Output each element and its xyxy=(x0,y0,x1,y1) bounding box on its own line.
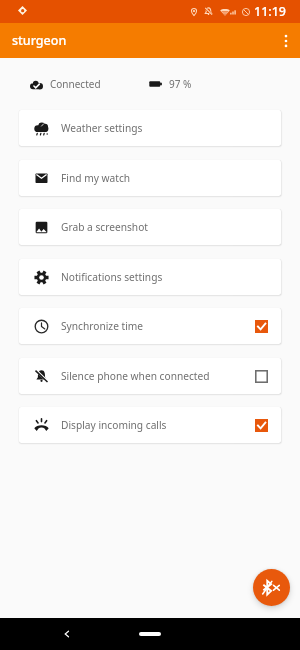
button[interactable]: Home xyxy=(139,632,161,636)
staticText: Display incoming calls xyxy=(61,418,167,432)
staticText: Grab a screenshot xyxy=(61,220,148,234)
button[interactable]: Display incoming calls xyxy=(19,407,281,443)
staticText: Connected xyxy=(50,77,101,91)
button[interactable]: Synchronize time xyxy=(19,308,281,344)
staticText: 97 % xyxy=(169,77,192,91)
button[interactable]: Grab a screenshot xyxy=(19,209,281,245)
staticText: 11:19 xyxy=(254,3,287,20)
button[interactable]: Notifications settings xyxy=(19,259,281,295)
button[interactable]: Back xyxy=(62,629,72,639)
staticText: Find my watch xyxy=(61,171,131,185)
staticText: sturgeon xyxy=(12,32,67,49)
button[interactable]: Silence phone when connected xyxy=(19,358,281,394)
button[interactable]: More options xyxy=(270,23,300,58)
staticText: Weather settings xyxy=(61,121,143,135)
staticText: Synchronize time xyxy=(61,319,144,333)
button[interactable]: Weather settings xyxy=(19,110,281,146)
button[interactable]: Disconnect bluetooth xyxy=(253,569,290,606)
staticText: Notifications settings xyxy=(61,270,163,284)
staticText: Silence phone when connected xyxy=(61,369,210,383)
button[interactable]: Find my watch xyxy=(19,160,281,196)
